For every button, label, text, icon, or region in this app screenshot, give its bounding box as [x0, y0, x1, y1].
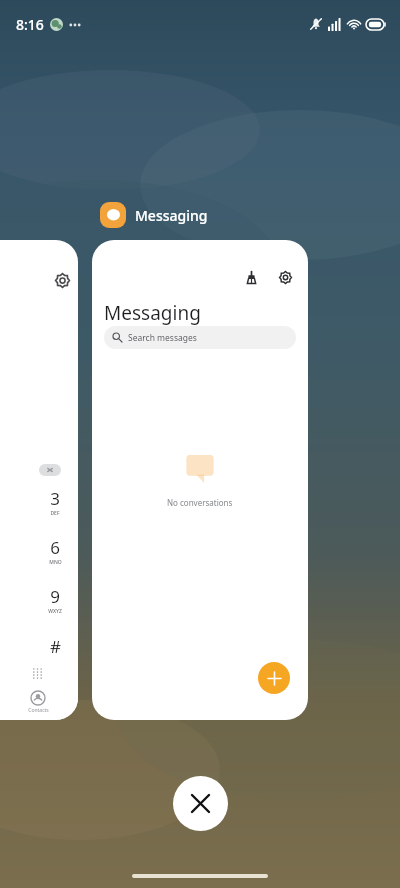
- button[interactable]: Search messages: [104, 326, 296, 349]
- staticText: WXYZ: [48, 608, 62, 615]
- button[interactable]: Clean up: [240, 266, 262, 288]
- button[interactable]: 9: [35, 585, 75, 615]
- staticText: DEF: [50, 510, 60, 517]
- button[interactable]: Settings: [50, 268, 74, 292]
- button[interactable]: New conversation: [258, 662, 290, 694]
- button[interactable]: Contacts: [18, 691, 58, 714]
- staticText: No conversations: [167, 497, 233, 508]
- button[interactable]: Clean up: [92, 240, 308, 720]
- button[interactable]: Settings: [274, 266, 296, 288]
- staticText: 9: [50, 585, 60, 608]
- button[interactable]: Keypad: [27, 663, 47, 683]
- staticText: #: [50, 635, 61, 658]
- staticText: 8:16: [16, 15, 44, 34]
- staticText: Messaging: [135, 206, 208, 225]
- staticText: MNO: [49, 559, 62, 566]
- staticText: Messaging: [104, 300, 201, 326]
- button[interactable]: 3: [35, 487, 75, 517]
- staticText: Contacts: [28, 707, 49, 714]
- button[interactable]: 6: [35, 536, 75, 566]
- button[interactable]: #: [35, 635, 75, 658]
- staticText: 3: [50, 487, 60, 510]
- button[interactable]: Backspace: [39, 464, 61, 476]
- button[interactable]: Messaging: [100, 202, 208, 228]
- staticText: 6: [50, 536, 60, 559]
- button[interactable]: Settings: [0, 240, 78, 720]
- button[interactable]: Clear all: [173, 776, 228, 831]
- staticText: Search messages: [128, 332, 197, 344]
